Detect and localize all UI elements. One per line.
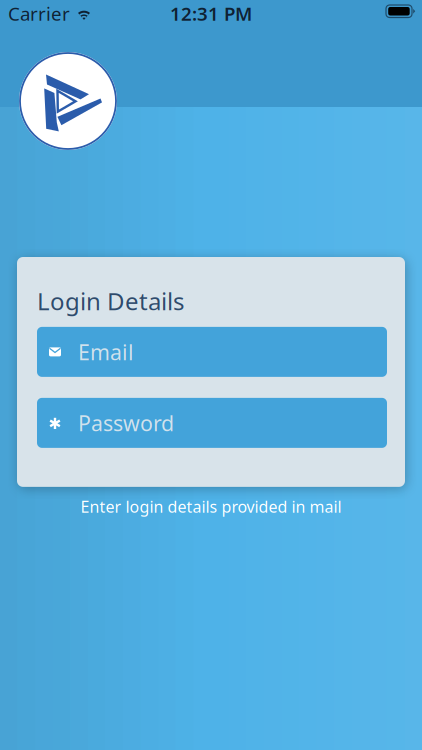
- staticText: 12:31 PM: [170, 1, 252, 26]
- button[interactable]: Password: [37, 398, 387, 448]
- staticText: Enter login details provided in mail: [80, 496, 341, 517]
- button[interactable]: Email: [37, 327, 387, 377]
- staticText: Login Details: [37, 285, 184, 317]
- staticText: Password: [78, 409, 174, 437]
- staticText: Carrier: [8, 1, 70, 26]
- staticText: Email: [78, 338, 134, 366]
